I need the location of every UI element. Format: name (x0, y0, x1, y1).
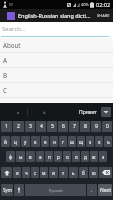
staticText: 4 (40, 123, 43, 130)
button[interactable]: Expand suggestions (101, 107, 111, 117)
staticText: Next (100, 187, 111, 194)
staticText: ф (9, 154, 13, 160)
staticText: у (24, 139, 27, 145)
button[interactable]: е (41, 136, 49, 147)
button[interactable]: Sym (1, 184, 13, 196)
button[interactable]: 2 (13, 121, 24, 132)
button[interactable]: Next (98, 184, 112, 196)
staticText: а (17, 110, 20, 115)
button[interactable]: 3 (25, 121, 35, 132)
button[interactable]: About (0, 38, 113, 52)
staticText: A (3, 56, 7, 64)
button[interactable]: э (99, 151, 107, 162)
button[interactable]: 6 (58, 121, 68, 132)
button[interactable]: с (31, 167, 39, 178)
button[interactable]: . (87, 184, 97, 196)
button[interactable]: ы (16, 151, 25, 162)
button[interactable]: щ (77, 136, 85, 147)
button[interactable]: у (21, 136, 30, 147)
button[interactable]: Backspace (99, 167, 112, 178)
staticText: е (44, 139, 47, 145)
staticText: English-Russian slang dicti... (18, 12, 94, 19)
button[interactable]: ц (11, 136, 20, 147)
staticText: SHARE (97, 13, 110, 18)
staticText: в (29, 154, 32, 160)
button[interactable]: т (59, 167, 68, 178)
staticText: 0 (106, 123, 109, 130)
button[interactable]: 9 (91, 121, 101, 132)
button[interactable]: 5 (47, 121, 57, 132)
staticText: B (3, 71, 8, 79)
staticText: 8 (84, 123, 87, 130)
button[interactable]: ч (22, 167, 30, 178)
button[interactable]: 7 (69, 121, 79, 132)
button[interactable]: о (63, 151, 71, 162)
button[interactable]: B (0, 68, 113, 82)
staticText: 3 (29, 123, 32, 130)
staticText: н (53, 139, 56, 145)
staticText: 2 (17, 123, 20, 130)
staticText: 6 (62, 123, 65, 130)
button[interactable]: 1 (1, 121, 12, 132)
button[interactable]: 4 (36, 121, 46, 132)
staticText: 7 (73, 123, 76, 130)
button[interactable]: н (50, 136, 58, 147)
button[interactable]: м (40, 167, 48, 178)
staticText: Привет (79, 109, 97, 116)
button[interactable]: Voice input (14, 184, 24, 196)
staticText: 40% (81, 2, 89, 7)
staticText: Search... (2, 25, 26, 33)
button[interactable]: р (54, 151, 62, 162)
button[interactable]: ь (69, 167, 78, 178)
staticText: с (34, 170, 37, 176)
button[interactable]: д (81, 151, 89, 162)
staticText: C (3, 86, 7, 94)
staticText: л (75, 154, 78, 160)
button[interactable]: ф (6, 151, 15, 162)
button[interactable]: а (36, 151, 44, 162)
button[interactable]: SHARE (94, 10, 113, 21)
button[interactable]: б (79, 167, 88, 178)
button[interactable]: я (13, 167, 21, 178)
staticText: х (98, 139, 101, 145)
button[interactable]: и (49, 167, 58, 178)
staticText: г (62, 139, 64, 145)
button[interactable]: Search... (0, 22, 113, 35)
staticText: з (89, 139, 92, 145)
button[interactable]: ю (89, 167, 98, 178)
button[interactable]: A (0, 53, 113, 67)
button[interactable]: ш (68, 136, 76, 147)
staticText: я (16, 170, 19, 176)
staticText: д (84, 154, 87, 160)
staticText: Русский (49, 188, 63, 193)
staticText: й (4, 139, 7, 145)
button[interactable]: л (72, 151, 80, 162)
staticText: Sym (3, 187, 12, 193)
staticText: ю (92, 170, 96, 176)
button[interactable]: Русский (25, 184, 86, 196)
button[interactable]: C (0, 83, 113, 97)
staticText: 02:02 (96, 1, 111, 8)
button[interactable]: 8 (80, 121, 90, 132)
staticText: р (57, 154, 60, 160)
button[interactable]: х (95, 136, 103, 147)
staticText: 9 (95, 123, 98, 130)
button[interactable]: ж (90, 151, 98, 162)
staticText: ц (14, 139, 17, 145)
button[interactable]: Shift (1, 167, 12, 178)
button[interactable]: ъ (104, 136, 112, 147)
staticText: щ (79, 139, 84, 145)
button[interactable]: й (1, 136, 10, 147)
staticText: б (82, 170, 85, 176)
staticText: п (48, 154, 51, 160)
button[interactable]: в (26, 151, 35, 162)
button[interactable]: з (86, 136, 94, 147)
button[interactable]: к (31, 136, 40, 147)
button[interactable]: 0 (102, 121, 112, 132)
button[interactable]: г (59, 136, 67, 147)
staticText: и (52, 170, 55, 176)
staticText: т (62, 170, 65, 176)
staticText: й (43, 110, 46, 115)
button[interactable]: п (45, 151, 53, 162)
staticText: ы (19, 154, 23, 160)
